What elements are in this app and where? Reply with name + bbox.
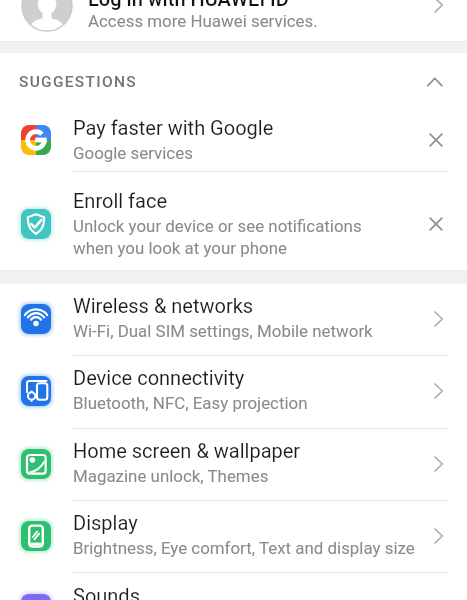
staticText: Sounds [73, 584, 140, 600]
staticText: Wi-Fi, Dual SIM settings, Mobile network [73, 321, 373, 341]
button[interactable] [434, 528, 444, 544]
staticText: Unlock your device or see notifications … [73, 216, 362, 258]
button[interactable] [429, 217, 443, 231]
button[interactable]: Log in with HUAWEI ID [0, 0, 467, 41]
button[interactable] [0, 428, 467, 500]
button[interactable] [0, 500, 467, 572]
staticText: Pay faster with Google [73, 116, 274, 139]
button[interactable] [434, 383, 444, 399]
staticText: Device connectivity [73, 366, 245, 389]
staticText: Google services [73, 143, 193, 163]
staticText: SUGGESTIONS [19, 73, 137, 91]
staticText: Access more Huawei services. [88, 11, 318, 31]
staticText: Display [73, 511, 138, 534]
staticText: Bluetooth, NFC, Easy projection [73, 393, 308, 413]
staticText: Home screen & wallpaper [73, 439, 301, 462]
button[interactable] [0, 573, 467, 600]
staticText: Magazine unlock, Themes [73, 466, 269, 486]
button[interactable] [0, 355, 467, 427]
button[interactable] [0, 283, 467, 355]
button[interactable] [434, 456, 444, 472]
button[interactable] [0, 103, 467, 171]
button[interactable] [434, 311, 444, 327]
staticText: Brightness, Eye comfort, Text and displa… [73, 538, 415, 558]
button[interactable] [427, 77, 443, 87]
button[interactable] [429, 133, 443, 147]
button[interactable] [0, 172, 467, 270]
staticText: Wireless & networks [73, 294, 254, 317]
staticText: Log in with HUAWEI ID [88, 0, 289, 10]
staticText: Enroll face [73, 189, 167, 212]
